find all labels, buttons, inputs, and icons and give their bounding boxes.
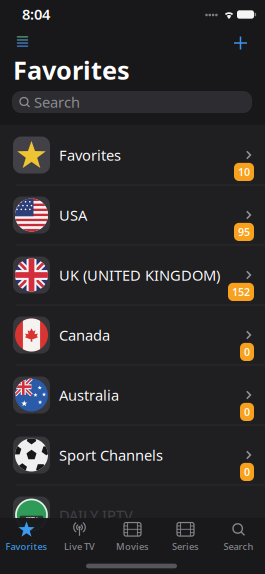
staticText: IPTV <box>26 516 37 523</box>
staticText: Live TV <box>64 540 95 553</box>
staticText: 95 <box>238 225 250 239</box>
button[interactable]: Favorites <box>0 125 265 185</box>
staticText: 0 <box>244 405 250 419</box>
button[interactable] <box>233 36 247 50</box>
staticText: Canada <box>59 325 110 345</box>
staticText: Favorites <box>13 53 130 87</box>
staticText: Favorites <box>59 145 121 165</box>
staticText: 10 <box>238 165 250 179</box>
staticText: Australia <box>59 385 119 405</box>
staticText: Favorites <box>5 540 47 553</box>
staticText: DAILY IPTV <box>59 505 133 525</box>
staticText: USA <box>59 205 87 225</box>
staticText: 152 <box>232 285 250 299</box>
staticText: Search <box>223 540 253 553</box>
button[interactable] <box>12 33 32 49</box>
button[interactable]: UK (UNITED KINGDOM) <box>0 245 265 305</box>
staticText: UK (UNITED KINGDOM) <box>59 265 220 285</box>
button[interactable]: Search <box>12 91 252 113</box>
button[interactable]: Movies <box>106 516 159 558</box>
button[interactable]: USA <box>0 185 265 245</box>
button[interactable]: Search <box>212 516 265 558</box>
staticText: 8:04 <box>22 4 50 24</box>
staticText: Series <box>172 540 199 553</box>
button[interactable]: Canada <box>0 305 265 365</box>
button[interactable]: Sport Channels <box>0 425 265 485</box>
button[interactable]: Series <box>159 516 212 558</box>
button[interactable]: Australia <box>0 365 265 425</box>
button[interactable]: Favorites <box>0 516 53 558</box>
staticText: Movies <box>116 540 149 553</box>
button[interactable]: Live TV <box>53 516 106 558</box>
staticText: 0 <box>244 345 250 359</box>
staticText: Sport Channels <box>59 445 163 465</box>
button[interactable]: IPTV <box>0 485 265 545</box>
staticText: 0 <box>244 465 250 479</box>
staticText: Search <box>34 92 80 112</box>
